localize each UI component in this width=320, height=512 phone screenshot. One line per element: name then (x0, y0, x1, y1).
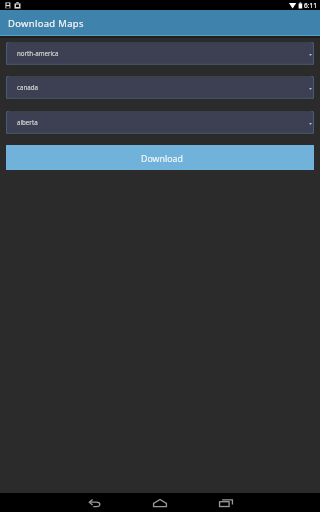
button[interactable]: Home (132, 493, 188, 512)
button[interactable]: canada (6, 76, 314, 99)
button[interactable]: Back (67, 493, 123, 512)
button[interactable]: Recent apps (198, 493, 254, 512)
button[interactable]: alberta (6, 111, 314, 134)
staticText: Download Maps (8, 17, 84, 30)
button[interactable]: Download (6, 145, 314, 170)
staticText: north-america (17, 49, 59, 57)
button[interactable]: north-america (6, 42, 314, 65)
staticText: 6:11 (304, 1, 317, 10)
button[interactable]: Download Maps (0, 10, 320, 35)
staticText: canada (17, 83, 39, 91)
staticText: Download (141, 153, 183, 165)
staticText: alberta (17, 118, 38, 126)
